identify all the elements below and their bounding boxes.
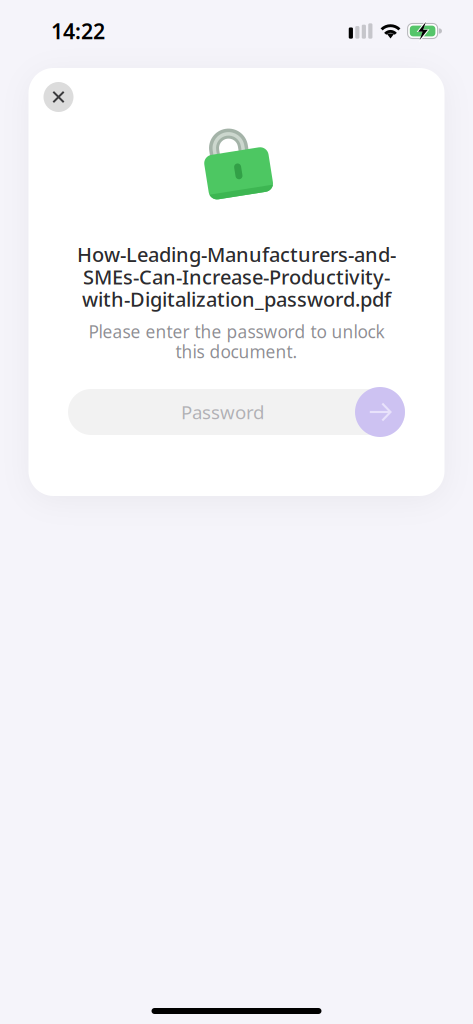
button[interactable]: Close	[43, 82, 73, 112]
button[interactable]: Password	[68, 389, 405, 435]
staticText: Please enter the password to unlock	[88, 320, 384, 343]
staticText: with-Digitalization_password.pdf	[82, 286, 391, 312]
staticText: 14:22	[51, 17, 105, 45]
staticText: How-Leading-Manufacturers-and-	[77, 241, 396, 268]
staticText: SMEs-Can-Increase-Productivity-	[83, 263, 390, 290]
staticText: Password	[181, 400, 264, 424]
staticText: this document.	[175, 340, 297, 363]
button[interactable]: Submit password	[355, 387, 405, 437]
